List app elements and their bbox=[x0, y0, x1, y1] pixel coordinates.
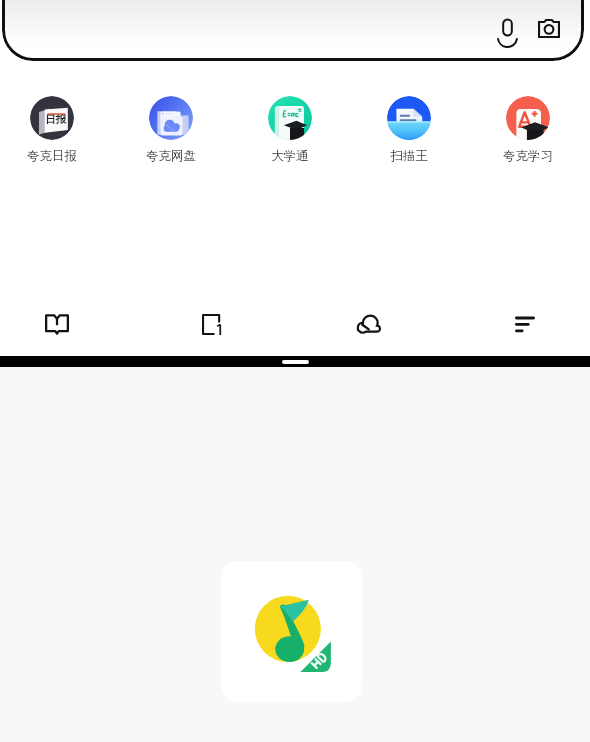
button[interactable]: Menu bbox=[501, 300, 549, 348]
staticText: 夸克日报 bbox=[27, 148, 77, 164]
button[interactable]: 扫描王 bbox=[349, 96, 468, 164]
button[interactable]: Bookmarks bbox=[33, 300, 81, 348]
button[interactable]: Tabs bbox=[189, 300, 237, 348]
staticText: 夸克网盘 bbox=[146, 148, 196, 164]
button[interactable]: 夸克学习 bbox=[468, 96, 587, 164]
button[interactable]: Voice search bbox=[492, 13, 522, 43]
staticText: 日报 bbox=[45, 113, 66, 126]
button[interactable]: Camera search bbox=[534, 13, 564, 43]
button[interactable]: QQ Music HD bbox=[221, 561, 362, 702]
button[interactable] bbox=[2, 0, 584, 61]
button[interactable]: 日报 bbox=[0, 96, 111, 164]
button[interactable]: Cloud bbox=[345, 300, 393, 348]
button[interactable]: 夸克网盘 bbox=[111, 96, 230, 164]
staticText: 扫描王 bbox=[390, 148, 428, 164]
staticText: 大学通 bbox=[271, 148, 309, 164]
staticText: 夸克学习 bbox=[503, 148, 553, 164]
button[interactable]: 大学通 bbox=[230, 96, 349, 164]
